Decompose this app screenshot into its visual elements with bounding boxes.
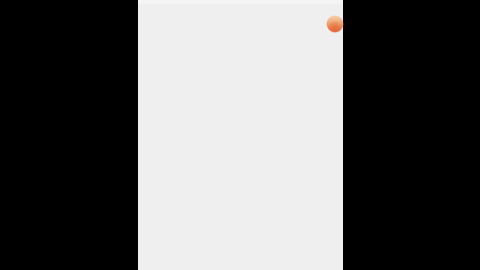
button[interactable]: Profile: [326, 15, 344, 33]
